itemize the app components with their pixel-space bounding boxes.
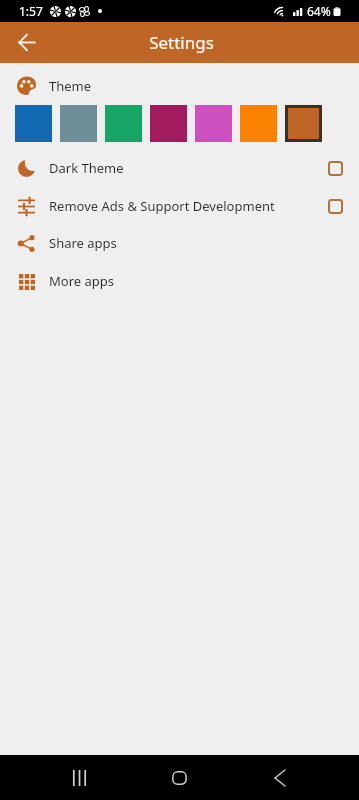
button[interactable]: Share apps: [0, 224, 359, 262]
button[interactable]: Back: [258, 756, 302, 800]
staticText: Theme: [49, 77, 92, 95]
button[interactable]: Dark Theme: [323, 156, 347, 180]
button[interactable]: More apps: [0, 262, 359, 300]
staticText: 64%: [307, 3, 331, 19]
button[interactable]: Home: [157, 756, 201, 800]
button[interactable]: Recent apps: [57, 756, 101, 800]
button[interactable]: Dark Theme: [0, 149, 359, 187]
button[interactable]: Remove Ads & Support Development: [0, 187, 359, 225]
staticText: More apps: [49, 272, 114, 290]
staticText: Dark Theme: [49, 159, 124, 177]
button[interactable]: Navigate up: [10, 26, 43, 59]
button[interactable]: Remove Ads & Support Development: [323, 194, 347, 218]
button[interactable]: Theme colour 7: [285, 105, 322, 142]
staticText: Share apps: [49, 234, 117, 252]
staticText: Remove Ads & Support Development: [49, 197, 275, 215]
staticText: 1:57: [19, 3, 43, 19]
staticText: Settings: [149, 31, 214, 54]
button[interactable]: Theme: [0, 67, 359, 104]
